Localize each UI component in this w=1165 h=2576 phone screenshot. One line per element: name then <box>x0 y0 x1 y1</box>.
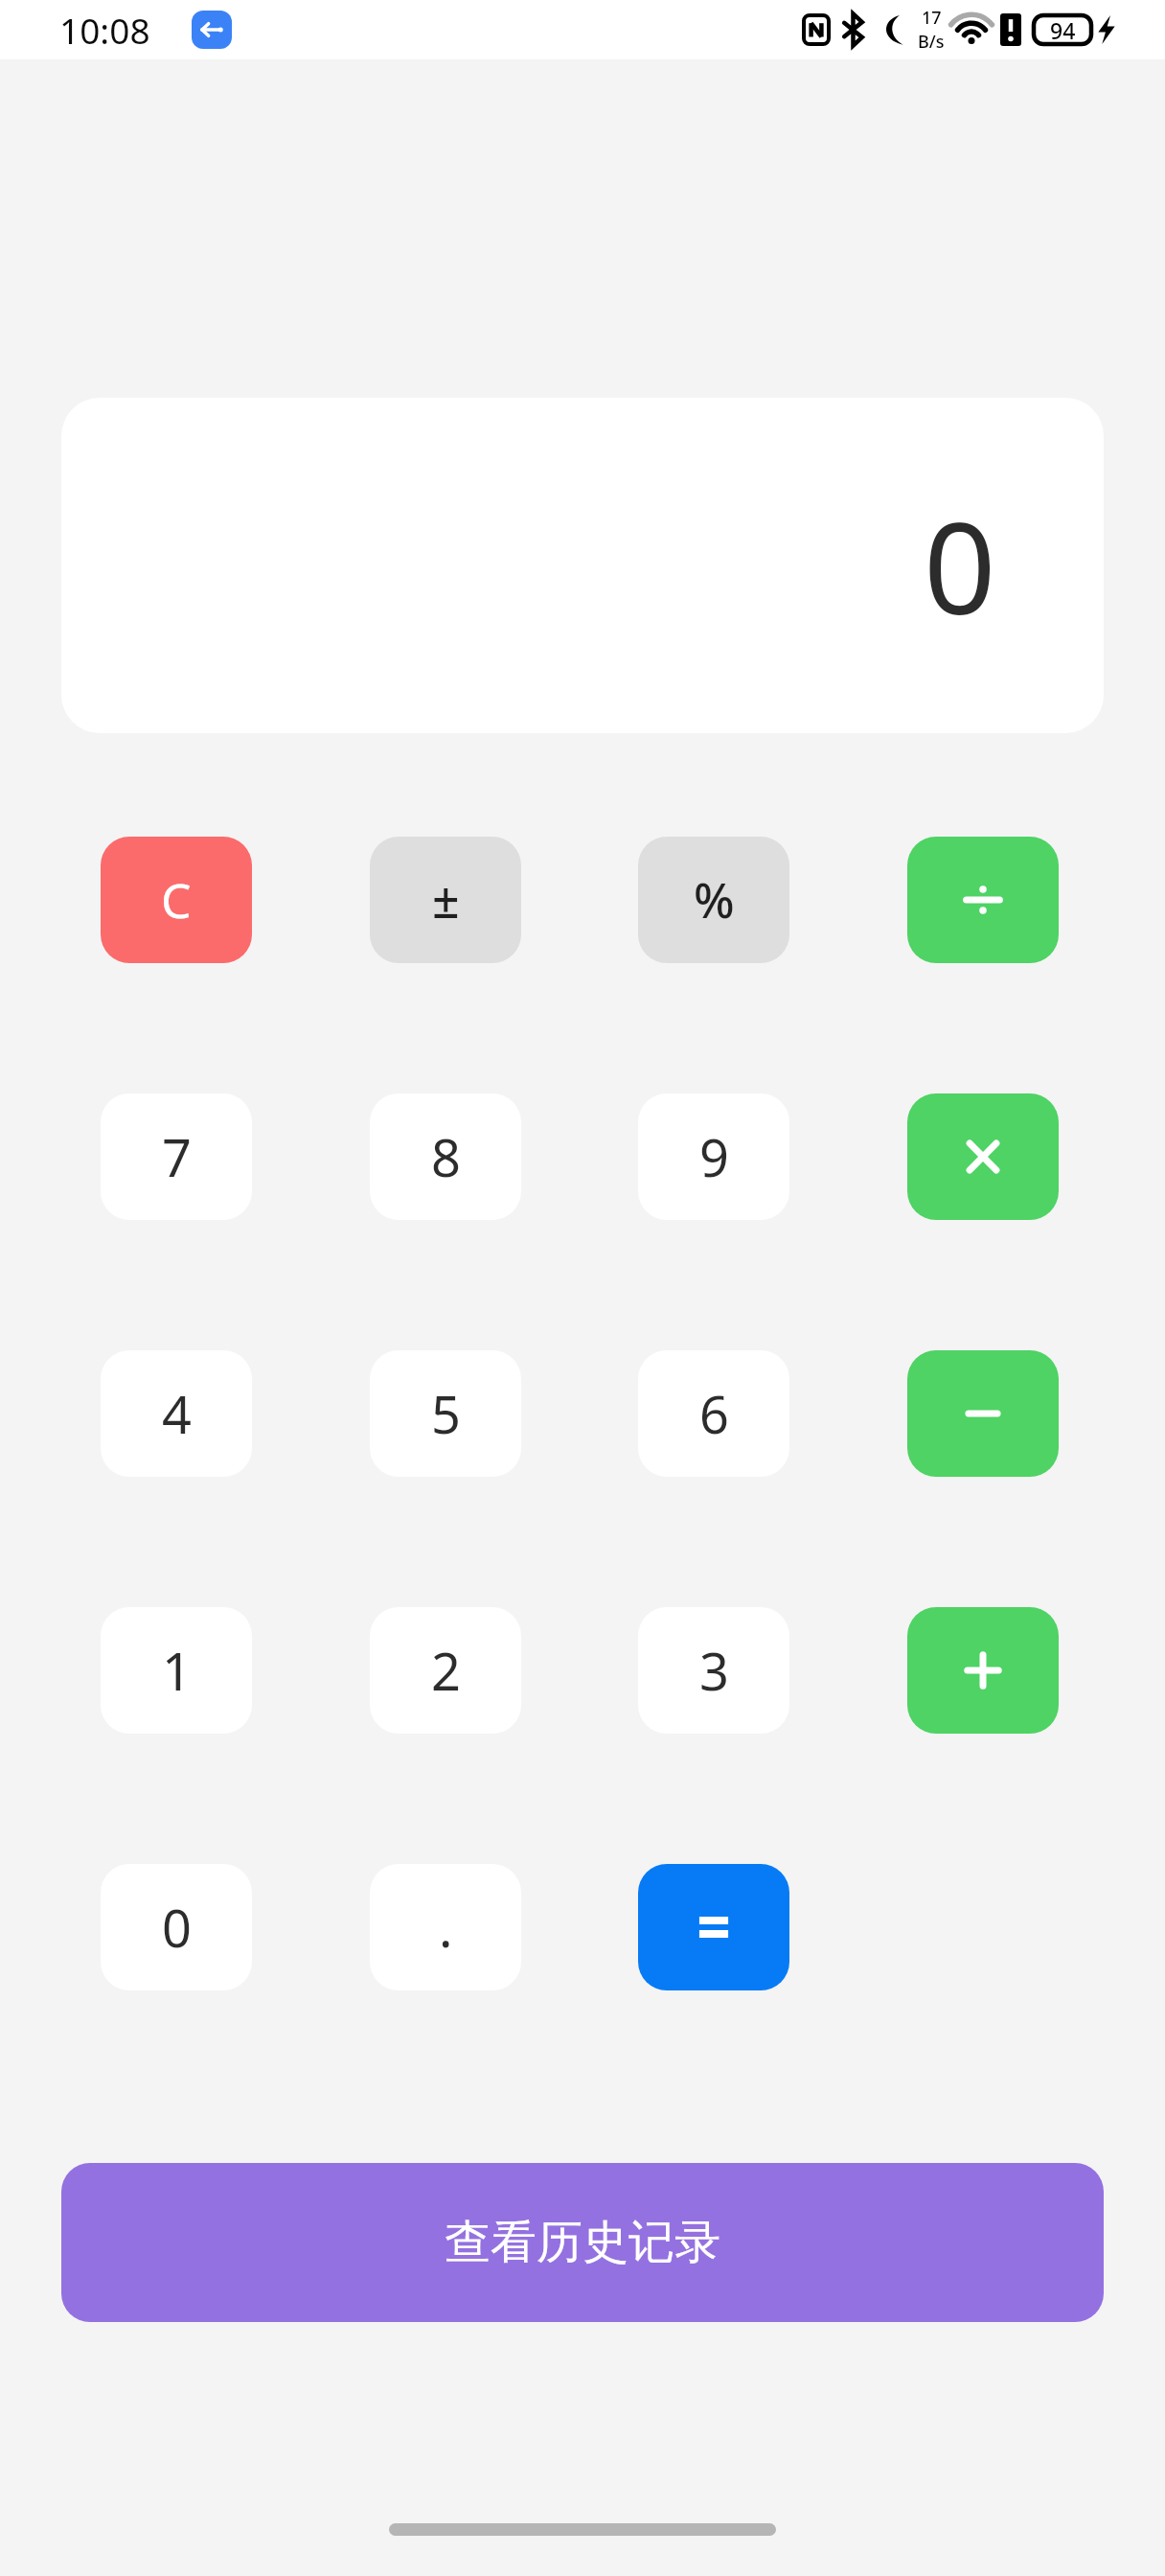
staticText: 0 <box>924 479 996 652</box>
button[interactable]: 查看历史记录 <box>61 2163 1104 2322</box>
staticText: 17 <box>922 6 942 30</box>
staticText: 7 <box>162 1121 192 1192</box>
button[interactable]: 1 <box>101 1607 252 1734</box>
staticText: 3 <box>699 1635 729 1706</box>
button[interactable]: C <box>101 837 252 963</box>
button[interactable]: 4 <box>101 1350 252 1477</box>
staticText: . <box>439 1892 453 1963</box>
button[interactable]: 6 <box>638 1350 789 1477</box>
staticText: 2 <box>431 1635 461 1706</box>
button[interactable]: Multiply <box>907 1093 1059 1220</box>
button[interactable]: 8 <box>370 1093 521 1220</box>
button[interactable]: 3 <box>638 1607 789 1734</box>
button[interactable]: Plus <box>907 1607 1059 1734</box>
button[interactable]: 7 <box>101 1093 252 1220</box>
button[interactable]: . <box>370 1864 521 1990</box>
button[interactable]: 0 <box>101 1864 252 1990</box>
staticText: 4 <box>162 1378 192 1449</box>
staticText: B/s <box>918 30 945 54</box>
button[interactable]: 0 <box>61 398 1104 733</box>
other: USB <box>192 11 232 49</box>
button[interactable]: 2 <box>370 1607 521 1734</box>
staticText: 0 <box>162 1892 192 1963</box>
button[interactable]: Equals <box>638 1864 789 1990</box>
staticText: ± <box>432 867 460 932</box>
staticText: % <box>694 867 735 932</box>
button[interactable]: 9 <box>638 1093 789 1220</box>
button[interactable]: 5 <box>370 1350 521 1477</box>
staticText: 8 <box>431 1121 461 1192</box>
button[interactable]: Divide <box>907 837 1059 963</box>
button[interactable]: ± <box>370 837 521 963</box>
staticText: 5 <box>431 1378 461 1449</box>
staticText: 6 <box>699 1378 729 1449</box>
staticText: 查看历史记录 <box>445 2214 720 2271</box>
staticText: 10:08 <box>59 6 150 54</box>
button[interactable]: Minus <box>907 1350 1059 1477</box>
staticText: 1 <box>162 1635 192 1706</box>
staticText: 9 <box>699 1121 729 1192</box>
staticText: 94 <box>1050 15 1076 45</box>
button[interactable]: % <box>638 837 789 963</box>
staticText: C <box>161 867 192 932</box>
